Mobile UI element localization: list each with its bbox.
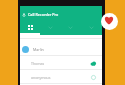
button[interactable]: Tab 1: [20, 21, 40, 35]
button[interactable]: Marlin: [20, 39, 102, 55]
staticText: Call Recorder Pro: [28, 12, 59, 17]
button[interactable]: Tab 3: [60, 21, 81, 35]
button[interactable]: anonymous: [20, 70, 102, 83]
staticText: anonymous: [31, 75, 51, 80]
staticText: Thomas: [31, 61, 45, 66]
button[interactable]: Tab 4: [81, 21, 102, 35]
button[interactable]: Tab 2: [40, 21, 60, 35]
button[interactable]: Favorite: [101, 13, 118, 30]
button[interactable]: Thomas: [20, 56, 102, 69]
staticText: Marlin: [33, 47, 44, 52]
